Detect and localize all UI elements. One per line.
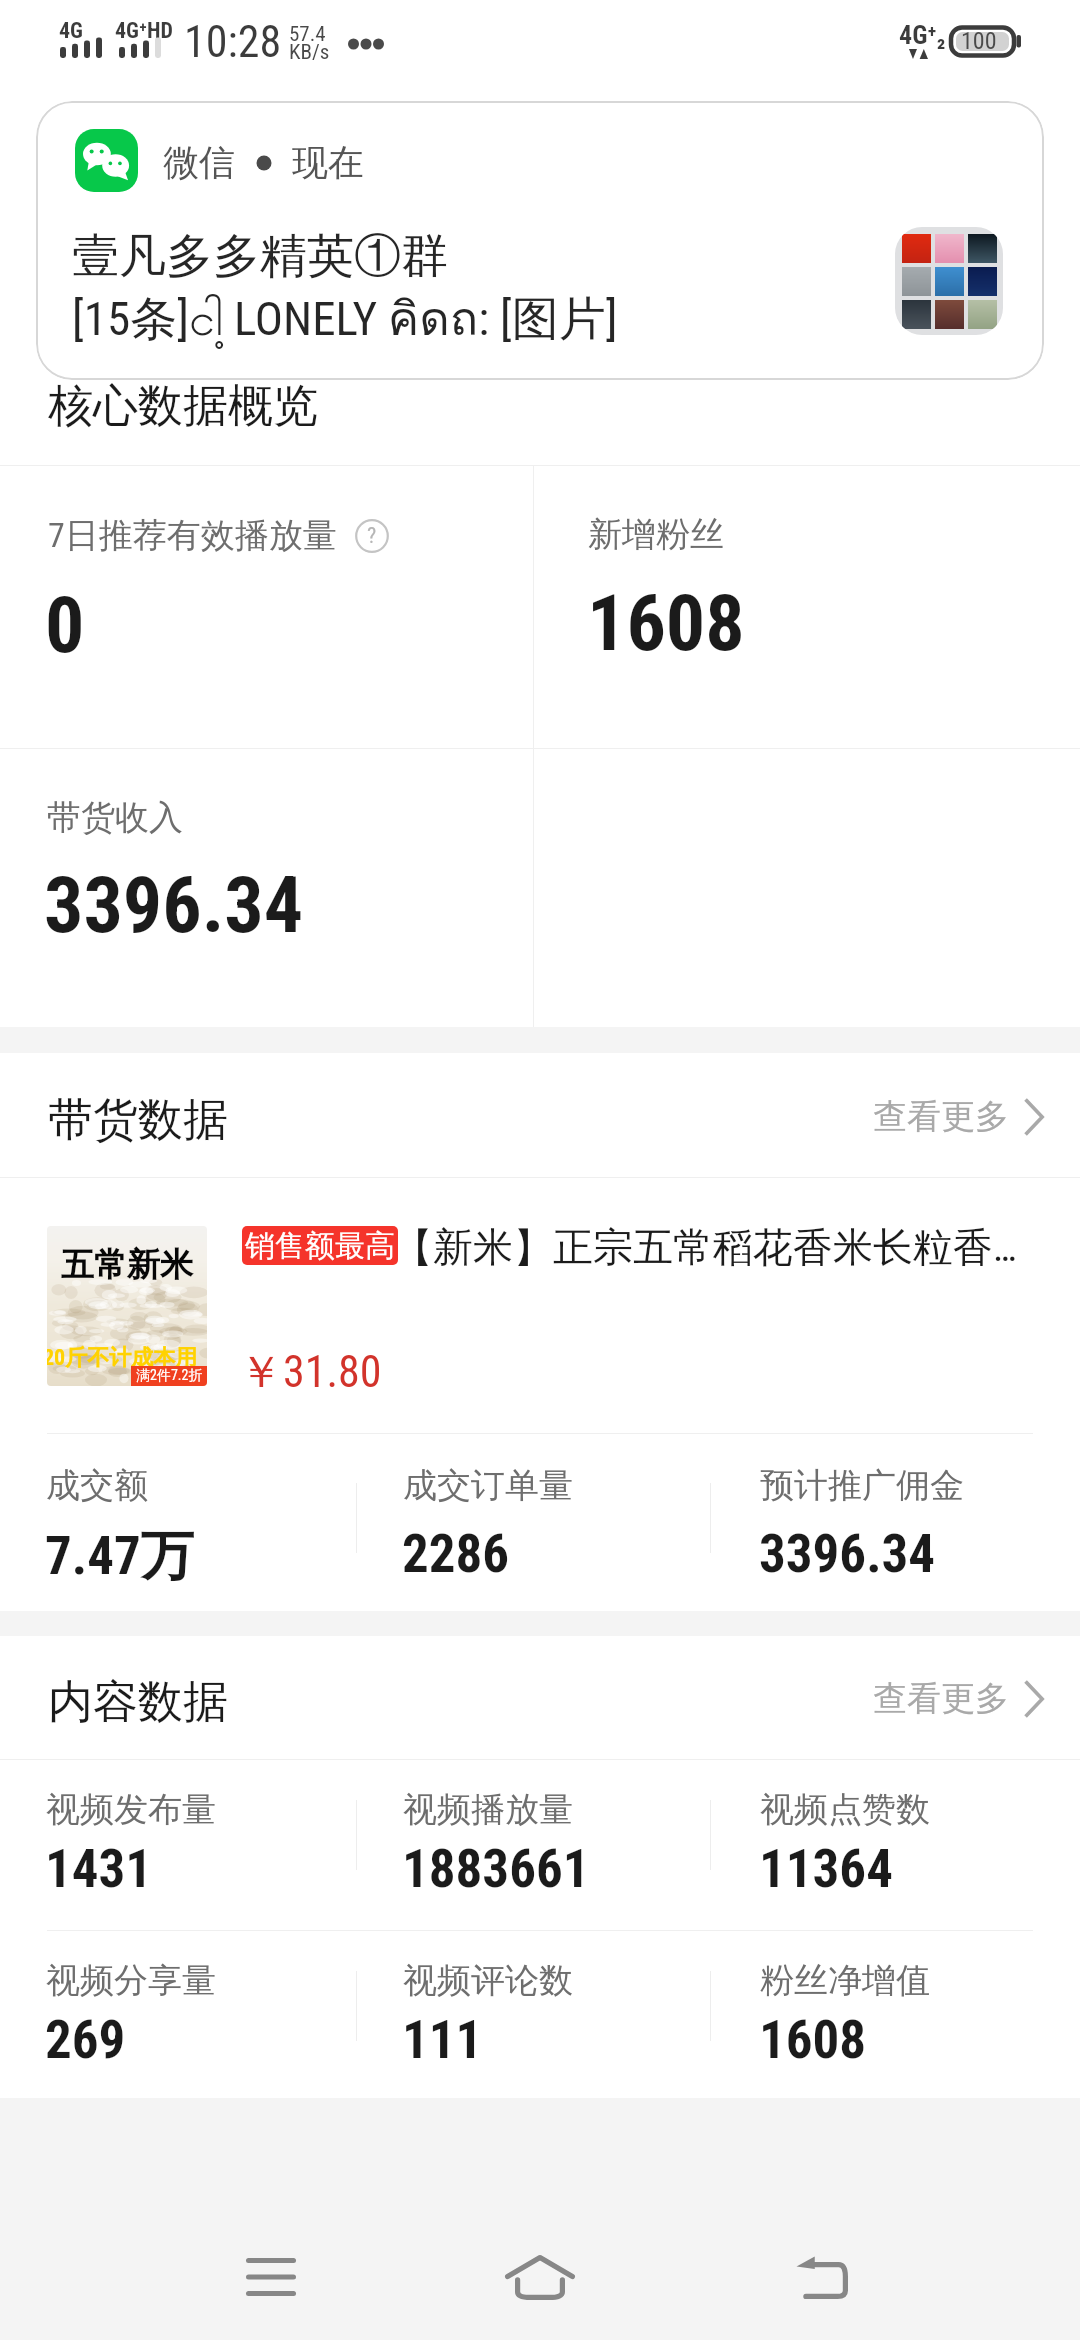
staticText: 3396.34 bbox=[44, 860, 304, 951]
staticText: 1608 bbox=[587, 578, 745, 669]
staticText: 【新米】正宗五常稻花香米长粒香… bbox=[393, 1222, 1021, 1272]
button[interactable]: Home bbox=[470, 2207, 610, 2340]
staticText: 预计推广佣金 bbox=[760, 1464, 964, 1507]
staticText: ? bbox=[367, 523, 377, 549]
staticText: 视频点赞数 bbox=[760, 1788, 930, 1831]
staticText: KB/s bbox=[289, 40, 330, 65]
staticText: 57.4 bbox=[289, 22, 326, 47]
staticText: 0 bbox=[45, 580, 85, 671]
staticText: 带货数据 bbox=[48, 1092, 228, 1149]
staticText: 壹凡多多精英①群 bbox=[72, 227, 448, 286]
button[interactable]: 查看更多 bbox=[851, 1073, 1080, 1160]
staticText: 4G bbox=[59, 18, 83, 44]
staticText: [15条]ငါ့ LONELY คิดถ: [图片] bbox=[72, 281, 618, 358]
staticText: 4G⁺₂ bbox=[899, 20, 946, 50]
button[interactable]: Recent apps bbox=[201, 2207, 341, 2340]
staticText: 11364 bbox=[759, 1838, 893, 1900]
staticText: 2286 bbox=[402, 1523, 510, 1585]
staticText: 粉丝净增值 bbox=[760, 1959, 930, 2002]
staticText: 1431 bbox=[45, 1838, 153, 1900]
staticText: 3396.34 bbox=[759, 1523, 936, 1585]
staticText: 111 bbox=[402, 2009, 483, 2071]
staticText: 10:28 bbox=[184, 16, 282, 68]
button[interactable] bbox=[0, 466, 540, 748]
staticText: 带货收入 bbox=[47, 796, 183, 839]
staticText: 销售额最高 bbox=[245, 1227, 395, 1265]
staticText: 新增粉丝 bbox=[588, 513, 724, 556]
staticText: 成交额 bbox=[46, 1464, 148, 1507]
staticText: 查看更多 bbox=[873, 1677, 1009, 1720]
button[interactable] bbox=[0, 749, 540, 1027]
button[interactable]: About recommended plays bbox=[355, 519, 389, 553]
staticText: 7日推荐有效播放量 bbox=[48, 514, 337, 557]
staticText: 视频播放量 bbox=[403, 1788, 573, 1831]
staticText: 269 bbox=[45, 2009, 126, 2071]
staticText: 100 bbox=[961, 27, 997, 55]
staticText: 内容数据 bbox=[48, 1674, 228, 1731]
staticText: 视频评论数 bbox=[403, 1959, 573, 2002]
staticText: 成交订单量 bbox=[403, 1464, 573, 1507]
staticText: 现在 bbox=[292, 140, 364, 185]
staticText: 视频发布量 bbox=[46, 1788, 216, 1831]
staticText: 7.47万 bbox=[45, 1523, 194, 1590]
staticText: 五常新米 bbox=[61, 1244, 193, 1286]
staticText: 核心数据概览 bbox=[48, 378, 318, 435]
button[interactable] bbox=[540, 466, 1080, 748]
button[interactable]: Back bbox=[752, 2207, 892, 2340]
button[interactable]: 五常新米 bbox=[0, 1178, 1080, 1433]
staticText: 满2件7.2折 bbox=[136, 1367, 203, 1385]
staticText: 1608 bbox=[759, 2009, 867, 2071]
staticText: 微信 bbox=[163, 140, 235, 185]
staticText: ￥31.80 bbox=[239, 1345, 382, 1400]
staticText: 查看更多 bbox=[873, 1095, 1009, 1138]
staticText: 1883661 bbox=[402, 1838, 590, 1900]
button[interactable]: 查看更多 bbox=[851, 1655, 1080, 1742]
button[interactable]: 微信 bbox=[36, 101, 1044, 380]
staticText: 4G⁺HD bbox=[115, 18, 173, 44]
staticText: 视频分享量 bbox=[46, 1959, 216, 2002]
staticText: 20斤不计成本用 bbox=[47, 1344, 207, 1372]
